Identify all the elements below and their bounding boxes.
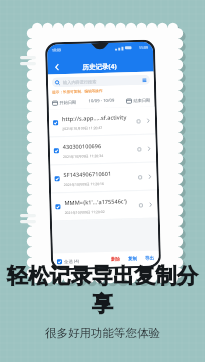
button[interactable]: Copy: [137, 201, 144, 208]
staticText: MMM={k1'...'a175546c'}: [64, 197, 127, 207]
button[interactable]: Copy: [136, 173, 144, 180]
button[interactable]: 输入内容进行搜索: [52, 75, 150, 87]
staticText: 输入内容进行搜索: [63, 79, 97, 85]
staticText: 10:09: [52, 47, 61, 52]
button[interactable]: 删除: [111, 256, 121, 263]
button[interactable]: More: [145, 173, 153, 180]
staticText: 430300100696: [63, 142, 102, 151]
button[interactable]: More: [145, 145, 152, 152]
staticText: 2021年10月09日 11:20:34: [63, 153, 104, 159]
staticText: 很多好用功能等您体验: [45, 326, 160, 340]
button[interactable]: 导出: [145, 256, 155, 262]
staticText: http://s.app.....sf.activity: [62, 113, 127, 123]
staticText: 全选 (4): [64, 258, 80, 264]
button[interactable]: SF1434906710601: [50, 162, 157, 192]
staticText: SF1434906710601: [63, 170, 112, 179]
staticText: 2021年10月09日 11:20:02: [64, 209, 106, 215]
button[interactable]: Copy: [136, 145, 143, 152]
staticText: 开始日期: [59, 100, 77, 105]
staticText: 2021年10月09日 11:20:16: [64, 181, 105, 187]
button[interactable]: Copy: [135, 117, 142, 124]
button[interactable]: More: [144, 117, 151, 124]
button[interactable]: More: [146, 201, 153, 208]
button[interactable]: http://s.app.....sf.activity: [49, 106, 155, 136]
staticText: 提示：长按可复制、编辑等操作: [52, 89, 103, 95]
staticText: 结束日期: [133, 98, 150, 103]
staticText: 轻松记录导出复制分享: [0, 263, 205, 317]
button[interactable]: 430300100696: [49, 134, 156, 164]
button[interactable]: Back: [52, 62, 63, 72]
staticText: 10/09 - 10/09: [88, 98, 115, 104]
button[interactable]: 复制: [128, 256, 138, 262]
staticText: 2021年10月09日 11:20:47: [62, 125, 103, 131]
button[interactable]: 开始日期: [52, 100, 77, 105]
button[interactable]: 结束日期: [126, 98, 150, 103]
staticText: 历史记录(4): [82, 62, 118, 72]
button[interactable]: 全选 (4): [57, 258, 80, 264]
staticText: 11:09: [139, 45, 148, 50]
button[interactable]: MMM={k1'...'a175546c'}: [51, 190, 158, 220]
